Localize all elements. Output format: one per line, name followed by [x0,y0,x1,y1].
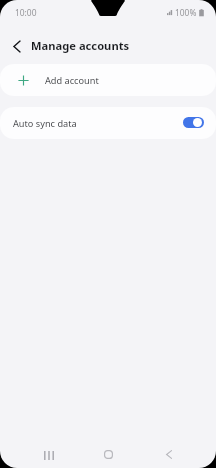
button[interactable]: Add account [0,64,216,96]
staticText: 10:00 [15,7,37,18]
button[interactable]: Recents [35,441,61,467]
staticText: 100% [175,7,197,18]
button[interactable]: Back [6,34,28,56]
button[interactable]: Auto sync data [183,117,204,128]
button[interactable]: Back [156,441,182,467]
button[interactable]: Home [95,441,121,467]
staticText: Manage accounts [31,38,130,53]
button[interactable]: Auto sync data [0,107,216,139]
staticText: Add account [45,74,99,87]
staticText: Auto sync data [13,117,77,130]
